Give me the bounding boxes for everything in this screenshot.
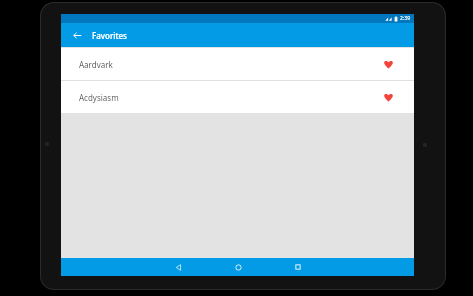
button[interactable]: Favorite — [378, 54, 398, 74]
button[interactable]: Recents — [268, 258, 328, 276]
staticText: Favorites — [92, 30, 127, 41]
button[interactable]: Aardvark — [61, 48, 414, 80]
button[interactable]: Favorite — [378, 87, 398, 107]
staticText: Acdysiasm — [79, 92, 119, 103]
staticText: Aardvark — [79, 59, 113, 70]
button[interactable]: Home — [208, 258, 268, 276]
button[interactable]: Acdysiasm — [61, 81, 414, 113]
button[interactable]: Back — [68, 26, 86, 44]
staticText: 2:39 — [400, 15, 410, 22]
button[interactable]: Back — [148, 258, 208, 276]
